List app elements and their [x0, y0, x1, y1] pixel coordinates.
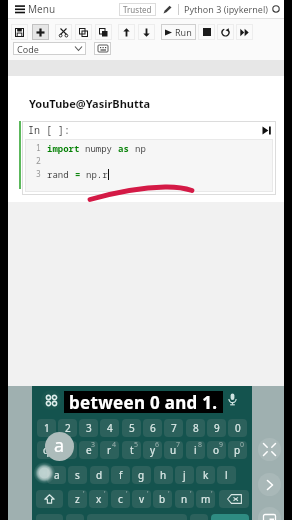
staticText: w	[64, 443, 72, 457]
button[interactable]: Keyboard shortcuts	[94, 42, 111, 55]
staticText: 7	[171, 421, 177, 435]
staticText: f	[119, 468, 123, 482]
staticText: 3	[91, 441, 96, 450]
button[interactable]: c	[111, 490, 130, 508]
button[interactable]: v	[132, 490, 151, 508]
button[interactable]: Toolbar action	[217, 24, 234, 40]
button[interactable]: m	[196, 490, 215, 508]
button[interactable]: 2	[58, 419, 77, 437]
button[interactable]: Toolbar action	[11, 24, 28, 40]
button[interactable]: Run	[161, 24, 196, 40]
staticText: a	[54, 433, 65, 458]
button[interactable]: 7	[164, 419, 183, 437]
button[interactable]: t	[122, 441, 141, 459]
button[interactable]: Backspace	[219, 490, 249, 508]
button[interactable]: i	[186, 441, 205, 459]
staticText: 2	[70, 441, 75, 450]
button[interactable]: Run cell	[262, 126, 271, 135]
button[interactable]: Shift	[36, 490, 63, 508]
staticText: as	[118, 142, 135, 154]
button[interactable]: 8	[186, 419, 205, 437]
button[interactable]: Comma	[66, 514, 84, 520]
staticText: '	[83, 490, 85, 499]
staticText: between 0 and 1.	[69, 391, 218, 413]
button[interactable]: Symbols	[36, 514, 63, 520]
staticText: s	[75, 468, 80, 482]
button[interactable]: g	[132, 466, 151, 484]
staticText: v	[139, 492, 145, 506]
button[interactable]: f	[111, 466, 130, 484]
button[interactable]: 4	[100, 419, 119, 437]
button[interactable]: 0	[228, 419, 247, 437]
staticText: import	[47, 142, 85, 154]
button[interactable]: h	[154, 466, 173, 484]
button[interactable]: n	[175, 490, 194, 508]
staticText: 9	[214, 421, 220, 435]
button[interactable]: Picture in picture	[258, 507, 281, 520]
button[interactable]: Enter	[211, 514, 249, 520]
button[interactable]: Toolbar action	[32, 24, 49, 40]
button[interactable]: w	[58, 441, 77, 459]
staticText: '	[104, 490, 106, 499]
button[interactable]: e	[79, 441, 98, 459]
button[interactable]: u	[164, 441, 183, 459]
button[interactable]: b	[153, 490, 172, 508]
button[interactable]: Toolbar action	[95, 24, 112, 40]
staticText: k	[203, 468, 209, 482]
button[interactable]: Trusted	[119, 3, 156, 16]
button[interactable]: Code	[13, 42, 86, 55]
button[interactable]: Toolbar action	[138, 24, 155, 40]
button[interactable]: k	[196, 466, 215, 484]
button[interactable]: Toolbar action	[236, 24, 253, 40]
staticText: h	[160, 468, 167, 482]
staticText: 4	[112, 441, 117, 450]
button[interactable]: a	[47, 466, 66, 484]
button[interactable]: Period	[190, 514, 208, 520]
button[interactable]: s	[68, 466, 87, 484]
button[interactable]: x	[89, 490, 108, 508]
staticText: np	[135, 142, 146, 154]
button[interactable]: Python 3 (ipykernel)	[184, 3, 280, 15]
staticText: g	[138, 468, 145, 482]
staticText: '	[211, 490, 213, 499]
button[interactable]: 9	[207, 419, 226, 437]
button[interactable]: Voice input	[224, 388, 240, 410]
staticText: 1	[44, 421, 50, 435]
staticText: m	[201, 492, 211, 506]
button[interactable]: Toolbar action	[75, 24, 92, 40]
button[interactable]: Menu	[13, 0, 58, 18]
staticText: 4	[107, 421, 113, 435]
button[interactable]: p	[228, 441, 247, 459]
staticText: Trusted	[123, 4, 152, 15]
button[interactable]: z	[68, 490, 87, 508]
button[interactable]: Toolbar action	[55, 24, 72, 40]
button[interactable]: Exit fullscreen	[258, 438, 281, 461]
button[interactable]: l	[217, 466, 236, 484]
button[interactable]: Edit	[162, 4, 173, 15]
staticText: Code	[17, 43, 39, 55]
button[interactable]: Toolbar action	[118, 24, 135, 40]
button[interactable]: 3	[79, 419, 98, 437]
button[interactable]: o	[207, 441, 226, 459]
button[interactable]: Toolbar action	[198, 24, 215, 40]
button[interactable]: 6	[143, 419, 162, 437]
staticText: '	[168, 490, 170, 499]
button[interactable]: j	[175, 466, 194, 484]
staticText: r	[107, 443, 112, 457]
button[interactable]: y	[143, 441, 162, 459]
button[interactable]: d	[90, 466, 109, 484]
button[interactable]: q	[37, 441, 56, 459]
staticText: In [ ]:	[28, 123, 70, 137]
button[interactable]: Next video	[258, 473, 281, 496]
staticText: t	[130, 443, 134, 457]
button[interactable]: Keyboard toolbar	[41, 390, 61, 410]
staticText: e	[86, 443, 92, 457]
staticText: 6	[155, 441, 160, 450]
button[interactable]: 5	[122, 419, 141, 437]
button[interactable]: r	[100, 441, 119, 459]
staticText: c	[118, 492, 123, 506]
button[interactable]: 1	[37, 419, 56, 437]
staticText: a	[54, 468, 60, 482]
staticText: p	[234, 443, 241, 457]
